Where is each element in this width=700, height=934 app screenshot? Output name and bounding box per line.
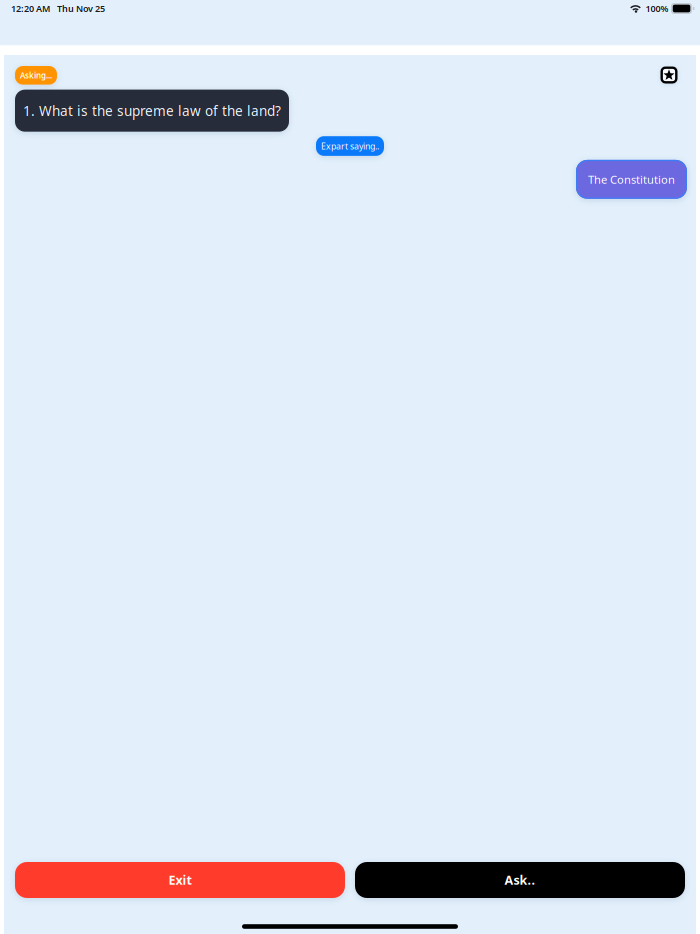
button[interactable]: Bookmark question [660, 66, 678, 84]
staticText: The Constitution [588, 172, 675, 187]
staticText: Exit [168, 872, 191, 888]
staticText: Thu Nov 25 [57, 2, 105, 14]
staticText: 100% [645, 2, 668, 14]
staticText: Ask.. [504, 872, 535, 888]
staticText: Expart saying.. [321, 140, 379, 152]
button[interactable]: Ask.. [355, 862, 685, 898]
staticText: Asking... [20, 70, 52, 81]
staticText: 1. What is the supreme law of the land? [23, 102, 281, 120]
staticText: 12:20 AM [11, 2, 50, 14]
button[interactable]: Exit [15, 862, 345, 898]
